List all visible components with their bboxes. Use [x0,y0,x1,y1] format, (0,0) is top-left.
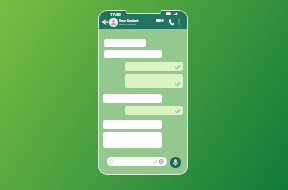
button[interactable] [104,39,146,47]
staticText: Your Contact [119,19,139,23]
button[interactable]: Video call [156,17,164,24]
button[interactable] [103,132,162,148]
button[interactable] [104,50,162,58]
button[interactable] [125,74,183,88]
button[interactable] [125,106,183,115]
button[interactable] [107,157,167,166]
staticText: online tap here [119,23,136,26]
button[interactable]: Your Contact [119,19,153,26]
button[interactable]: Call [169,19,174,25]
staticText: 17:30 [110,12,121,18]
button[interactable]: Back [102,19,109,25]
button[interactable]: More options [177,19,181,25]
button[interactable] [125,62,183,71]
button[interactable] [103,94,162,103]
button[interactable]: Record voice message [170,157,181,168]
button[interactable] [103,120,162,129]
